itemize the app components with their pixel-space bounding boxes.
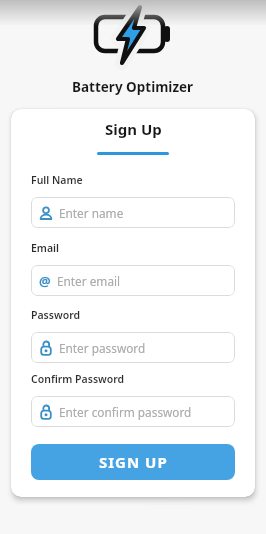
staticText: Enter confirm password bbox=[59, 404, 192, 420]
staticText: Password bbox=[31, 308, 81, 322]
button[interactable]: Enter password bbox=[31, 332, 235, 363]
staticText: Enter name bbox=[59, 205, 124, 221]
staticText: Battery Optimizer bbox=[72, 78, 194, 96]
staticText: Full Name bbox=[31, 173, 83, 187]
staticText: SIGN UP bbox=[99, 452, 168, 472]
staticText: Confirm Password bbox=[31, 372, 125, 386]
staticText: Enter email bbox=[57, 273, 121, 289]
button[interactable]: Enter name bbox=[31, 197, 235, 228]
staticText: Enter password bbox=[59, 340, 146, 356]
staticText: Sign Up bbox=[105, 119, 162, 139]
button[interactable]: SIGN UP bbox=[31, 444, 235, 480]
staticText: @ bbox=[39, 272, 51, 290]
button[interactable]: @ bbox=[31, 265, 235, 296]
staticText: Email bbox=[31, 241, 60, 255]
button[interactable]: Enter confirm password bbox=[31, 396, 235, 427]
